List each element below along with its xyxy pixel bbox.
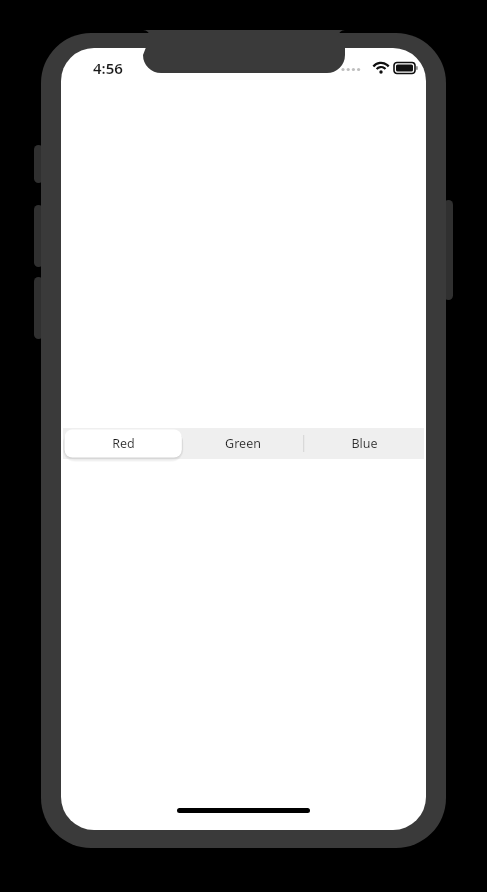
button[interactable]: Red [63,428,183,459]
staticText: Green [225,435,261,452]
staticText: Blue [351,435,378,452]
button[interactable]: Blue [304,428,424,459]
staticText: 4:56 [93,58,123,78]
other: Notch [140,30,348,78]
button[interactable]: Green [183,428,303,459]
staticText: Red [112,435,135,452]
